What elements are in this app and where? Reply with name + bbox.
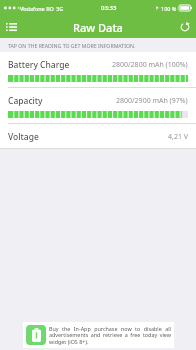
- staticText: 3G: [56, 5, 64, 12]
- button[interactable]: Capacity: [0, 88, 196, 123]
- staticText: Vodafone RO: [20, 5, 54, 12]
- staticText: TAP ON THE READING TO GET MORE INFORMATI…: [8, 42, 136, 49]
- staticText: Voltage: [8, 131, 39, 143]
- button[interactable]: Buy the In-App purchase now to disable a…: [23, 322, 174, 348]
- staticText: 2800/2900 mAh (97%): [116, 96, 188, 106]
- button[interactable]: Voltage: [0, 124, 196, 148]
- staticText: 4,21 V: [168, 132, 188, 142]
- staticText: 2800/2800 mAh (100%): [112, 60, 188, 70]
- button[interactable]: Battery Charge: [0, 52, 196, 87]
- button[interactable]: Menu: [0, 16, 22, 38]
- staticText: 100 %: [161, 5, 177, 12]
- button[interactable]: Refresh: [174, 16, 196, 38]
- staticText: Buy the In-App purchase now to disable a…: [49, 325, 171, 346]
- staticText: 03:33: [101, 4, 117, 12]
- staticText: Capacity: [8, 95, 43, 107]
- staticText: Raw Data: [73, 20, 123, 35]
- staticText: Battery Charge: [8, 59, 70, 71]
